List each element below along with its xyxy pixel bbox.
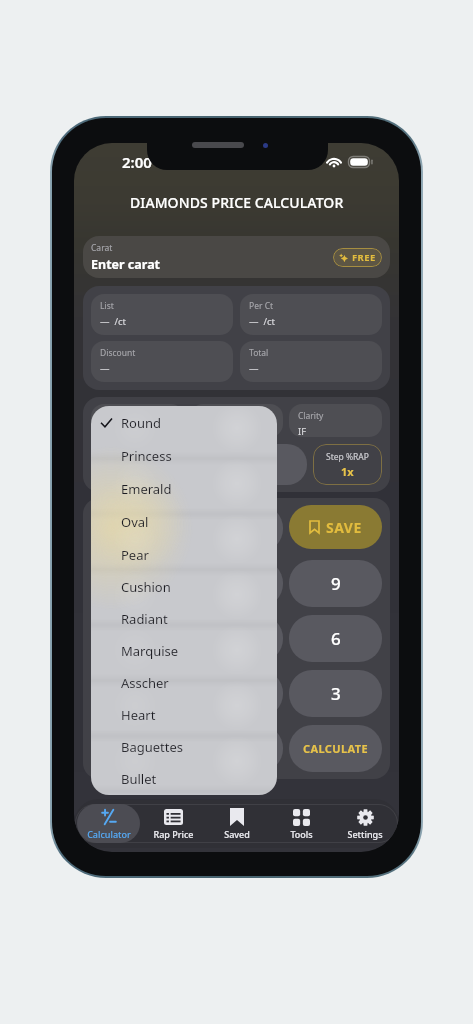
- button[interactable]: C: [91, 725, 184, 772]
- button[interactable]: SAVE: [289, 505, 382, 549]
- button[interactable]: Calculator: [77, 804, 140, 843]
- staticText: Baguettes: [121, 738, 184, 756]
- staticText: Princess: [121, 447, 172, 465]
- button[interactable]: 0: [91, 670, 184, 717]
- button[interactable]: ⌫: [190, 725, 283, 772]
- button[interactable]: 1: [91, 615, 184, 662]
- button[interactable]: Emerald: [91, 472, 277, 505]
- button[interactable]: Princess: [91, 439, 277, 472]
- staticText: 2: [232, 627, 242, 650]
- staticText: 2:00: [122, 152, 152, 172]
- staticText: C: [132, 737, 143, 760]
- button[interactable]: Carat: [83, 236, 390, 278]
- button[interactable]: Discount: [91, 341, 233, 382]
- staticText: Shape: [100, 410, 125, 422]
- staticText: — /ct: [100, 315, 126, 328]
- staticText: +: [250, 453, 260, 476]
- staticText: Tools: [290, 828, 313, 840]
- staticText: CALCULATE: [303, 741, 369, 756]
- button[interactable]: Tools: [270, 804, 332, 843]
- staticText: Heart: [121, 706, 156, 724]
- button[interactable]: Total: [240, 341, 382, 382]
- staticText: 1x: [341, 464, 354, 479]
- button[interactable]: 5: [190, 560, 283, 607]
- staticText: IF: [298, 425, 307, 437]
- button[interactable]: Clarity: [289, 404, 382, 437]
- staticText: Marquise: [121, 642, 179, 660]
- button[interactable]: Rap Price: [142, 804, 204, 843]
- button[interactable]: 7: [91, 505, 184, 552]
- staticText: —: [100, 362, 110, 375]
- staticText: Clarity: [298, 410, 324, 422]
- button[interactable]: Saved: [206, 804, 268, 843]
- staticText: DIAMONDS PRICE CALCULATOR: [130, 193, 344, 212]
- staticText: Rap Price: [153, 828, 194, 840]
- button[interactable]: 4: [91, 560, 184, 607]
- staticText: Discount: [100, 347, 136, 359]
- staticText: Calculator: [87, 828, 131, 840]
- staticText: 5: [232, 572, 242, 595]
- staticText: Radiant: [121, 610, 168, 628]
- button[interactable]: −: [91, 444, 196, 485]
- button[interactable]: 8: [190, 505, 283, 552]
- button[interactable]: +: [202, 444, 307, 485]
- button[interactable]: 9: [289, 560, 382, 607]
- button[interactable]: 2: [190, 615, 283, 662]
- staticText: Enter carat: [91, 256, 161, 273]
- button[interactable]: Oval: [91, 505, 277, 538]
- staticText: 4: [133, 572, 143, 595]
- staticText: FREE: [352, 251, 376, 264]
- staticText: Round: [100, 425, 130, 437]
- staticText: SAVE: [326, 518, 362, 537]
- staticText: Oval: [121, 513, 149, 531]
- staticText: Pear: [121, 546, 149, 564]
- staticText: 9: [331, 572, 341, 595]
- button[interactable]: Shape: [91, 404, 184, 437]
- staticText: —: [249, 362, 259, 375]
- button[interactable]: Step %RAP: [313, 444, 382, 485]
- staticText: Cushion: [121, 578, 171, 596]
- staticText: Bullet: [121, 770, 157, 788]
- button[interactable]: FREE: [333, 248, 382, 267]
- button[interactable]: .: [190, 670, 283, 717]
- staticText: 0: [133, 682, 143, 705]
- staticText: Saved: [224, 828, 250, 840]
- staticText: 3: [331, 682, 341, 705]
- button[interactable]: Pear: [91, 538, 277, 571]
- button[interactable]: 3: [289, 670, 382, 717]
- staticText: 1: [133, 627, 143, 650]
- button[interactable]: Marquise: [91, 635, 277, 667]
- button[interactable]: Cushion: [91, 571, 277, 603]
- staticText: Settings: [347, 828, 383, 840]
- button[interactable]: List: [91, 294, 233, 335]
- button[interactable]: Radiant: [91, 603, 277, 635]
- button[interactable]: 6: [289, 615, 382, 662]
- staticText: .: [234, 682, 239, 705]
- staticText: Per Ct: [249, 300, 274, 312]
- button[interactable]: CALCULATE: [289, 725, 382, 772]
- button[interactable]: Bullet: [91, 763, 277, 795]
- staticText: List: [100, 300, 114, 312]
- staticText: Carat: [91, 242, 113, 254]
- button[interactable]: Asscher: [91, 667, 277, 699]
- staticText: Asscher: [121, 674, 169, 692]
- staticText: Step %RAP: [326, 451, 369, 463]
- button[interactable]: Heart: [91, 699, 277, 731]
- staticText: 6: [331, 627, 341, 650]
- staticText: Round: [121, 414, 162, 432]
- staticText: 7: [133, 517, 143, 540]
- button[interactable]: Color: [190, 404, 283, 437]
- button[interactable]: Baguettes: [91, 731, 277, 763]
- staticText: −: [139, 453, 149, 476]
- button[interactable]: Settings: [334, 804, 396, 843]
- staticText: — /ct: [249, 315, 275, 328]
- staticText: Emerald: [121, 480, 172, 498]
- staticText: Total: [249, 347, 269, 359]
- button[interactable]: Per Ct: [240, 294, 382, 335]
- button[interactable]: Round: [91, 406, 277, 439]
